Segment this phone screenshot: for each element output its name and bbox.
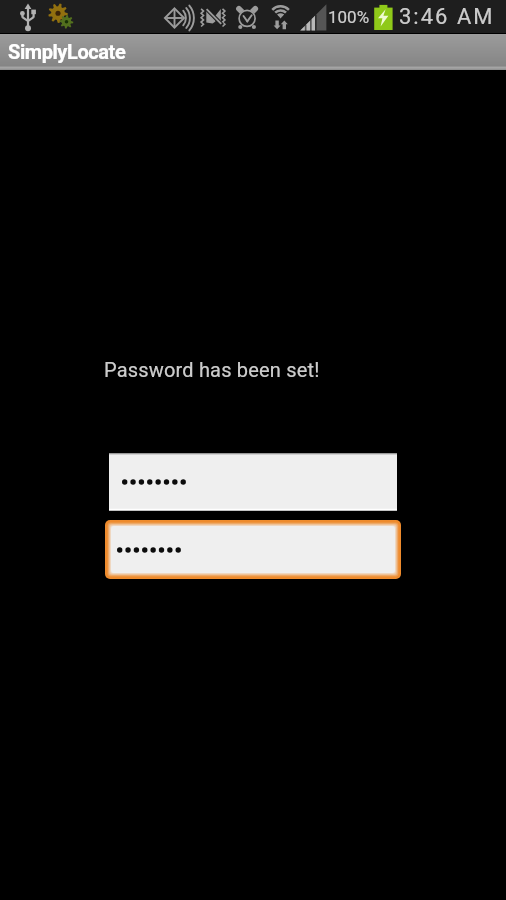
staticText: SimplyLocate	[8, 40, 126, 63]
staticText: 100%	[328, 7, 370, 27]
other: USB connected	[14, 5, 38, 29]
staticText: 3:46 AM	[399, 4, 495, 30]
button[interactable]: SimplyLocate	[0, 34, 506, 70]
staticText: Password has been set!	[104, 358, 320, 381]
button[interactable]	[109, 453, 397, 511]
button[interactable]	[105, 520, 401, 579]
